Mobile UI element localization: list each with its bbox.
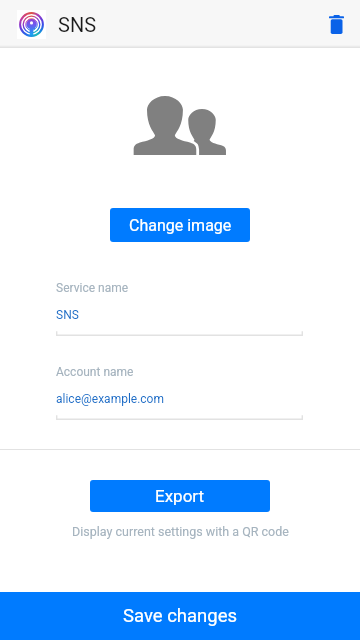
button[interactable]: App icon [17, 10, 46, 39]
button[interactable]: Save changes [0, 592, 360, 640]
staticText: alice@example.com [56, 392, 164, 406]
staticText: Account name [56, 365, 134, 379]
staticText: Service name [56, 281, 129, 295]
button[interactable]: Export [90, 480, 270, 512]
button[interactable]: Delete [312, 0, 360, 48]
staticText: Display current settings with a QR code [72, 524, 289, 539]
staticText: SNS [56, 308, 79, 322]
staticText: Save changes [123, 605, 238, 627]
staticText: Change image [129, 216, 232, 235]
staticText: SNS [58, 13, 97, 36]
staticText: Export [155, 486, 205, 506]
button[interactable]: Change image [110, 208, 250, 242]
